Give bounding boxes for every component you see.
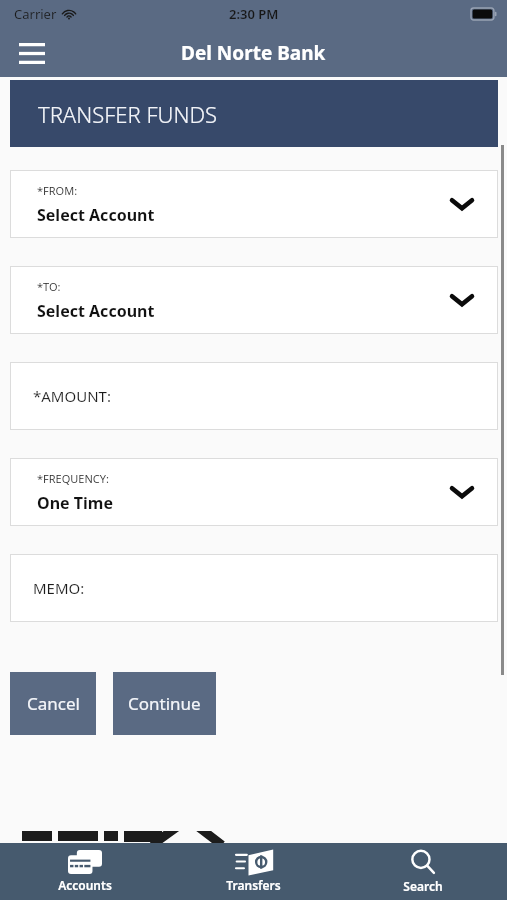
staticText: One Time [37, 492, 113, 514]
staticText: *FROM: [37, 183, 78, 198]
staticText: TRANSFER FUNDS [38, 99, 218, 129]
button[interactable]: Search [338, 843, 507, 900]
staticText: *AMOUNT: [33, 386, 111, 406]
staticText: Continue [128, 692, 201, 715]
staticText: Transfers [226, 877, 281, 893]
staticText: *FREQUENCY: [37, 471, 109, 486]
button[interactable]: Transfers [169, 843, 338, 900]
button[interactable]: Menu [12, 33, 52, 73]
staticText: Cancel [27, 692, 80, 715]
staticText: Select Account [37, 204, 155, 226]
staticText: Del Norte Bank [181, 40, 326, 66]
button[interactable]: *FREQUENCY: [10, 458, 498, 526]
staticText: *TO: [37, 279, 61, 294]
staticText: Carrier [14, 5, 57, 23]
button[interactable]: MEMO: [10, 554, 498, 622]
staticText: Select Account [37, 300, 155, 322]
button[interactable]: Continue [113, 672, 216, 735]
button[interactable]: Cancel [10, 672, 96, 735]
staticText: Search [403, 878, 443, 894]
button[interactable]: Accounts [0, 843, 169, 900]
button[interactable]: *TO: [10, 266, 498, 334]
button[interactable]: *AMOUNT: [10, 362, 498, 430]
button[interactable]: *FROM: [10, 170, 498, 238]
staticText: 2:30 PM [229, 5, 279, 23]
staticText: MEMO: [33, 578, 85, 598]
staticText: Accounts [58, 877, 112, 893]
